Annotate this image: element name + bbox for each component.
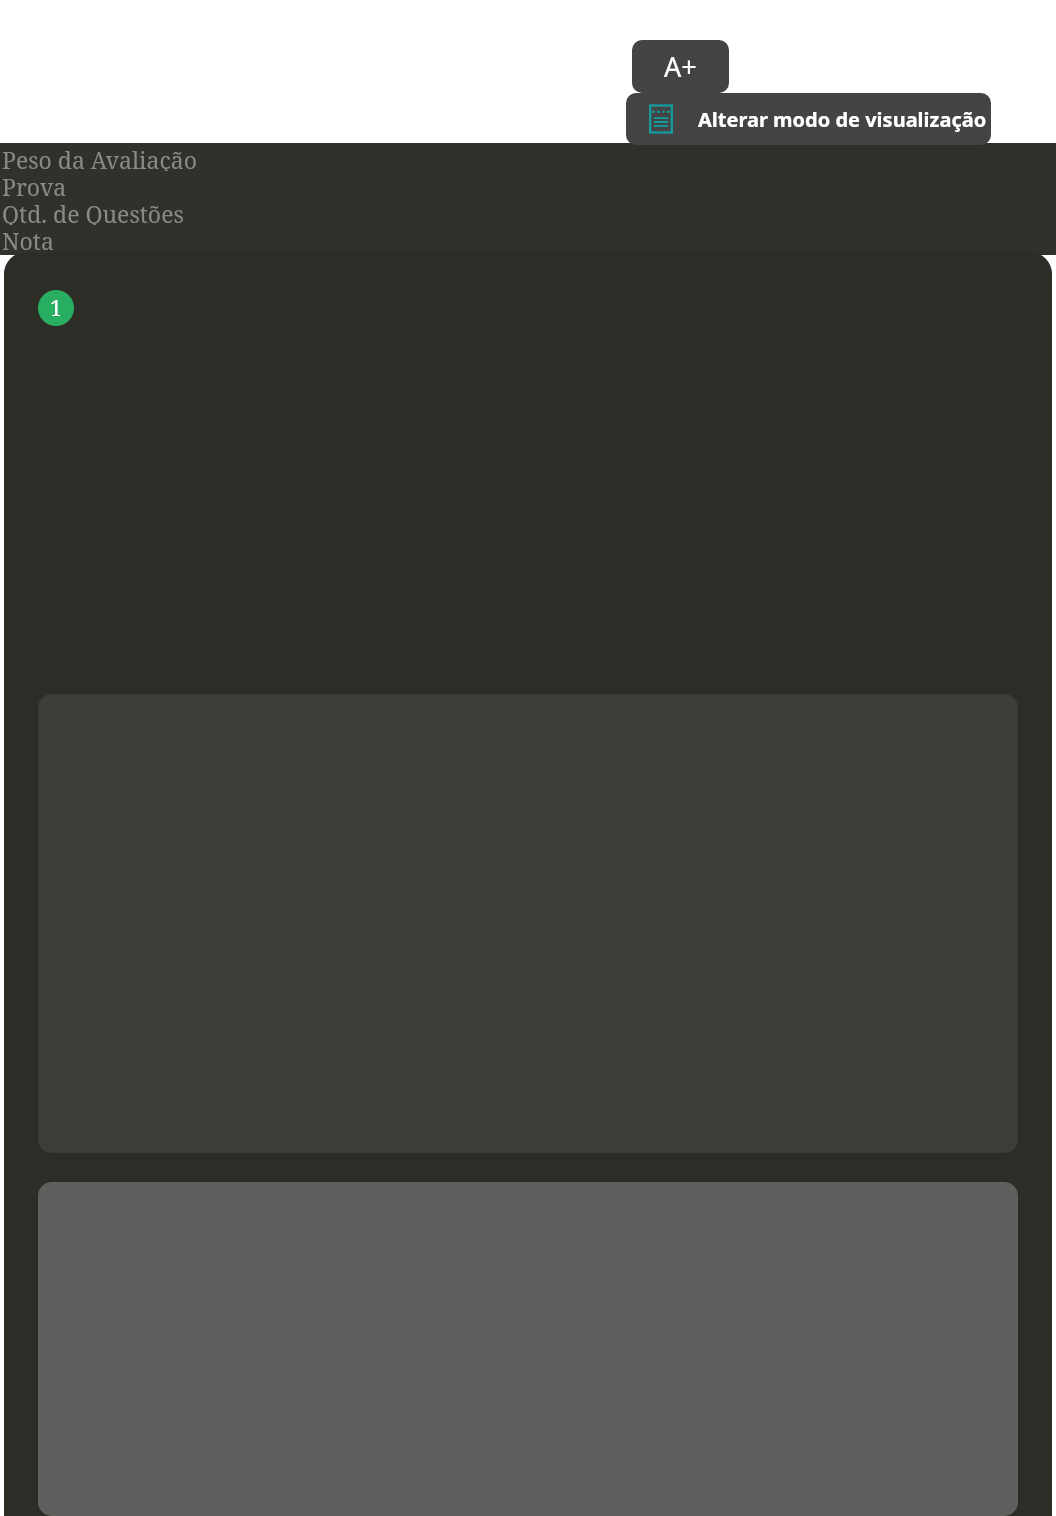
staticText: Nota — [2, 225, 54, 252]
staticText: A+ — [664, 48, 697, 85]
button[interactable]: A+ — [632, 40, 729, 93]
other: Alterar modo de visualização — [646, 104, 676, 134]
staticText: Peso da Avaliação — [2, 144, 197, 171]
staticText: Qtd. de Questões — [2, 198, 184, 225]
staticText: Alterar modo de visualização — [698, 106, 987, 133]
staticText: Prova — [2, 171, 67, 198]
button[interactable]: Alterar modo de visualização — [626, 93, 991, 145]
button[interactable]: 1 — [4, 252, 1052, 1516]
staticText: 1 — [50, 294, 62, 323]
button[interactable]: 1 — [38, 290, 74, 326]
